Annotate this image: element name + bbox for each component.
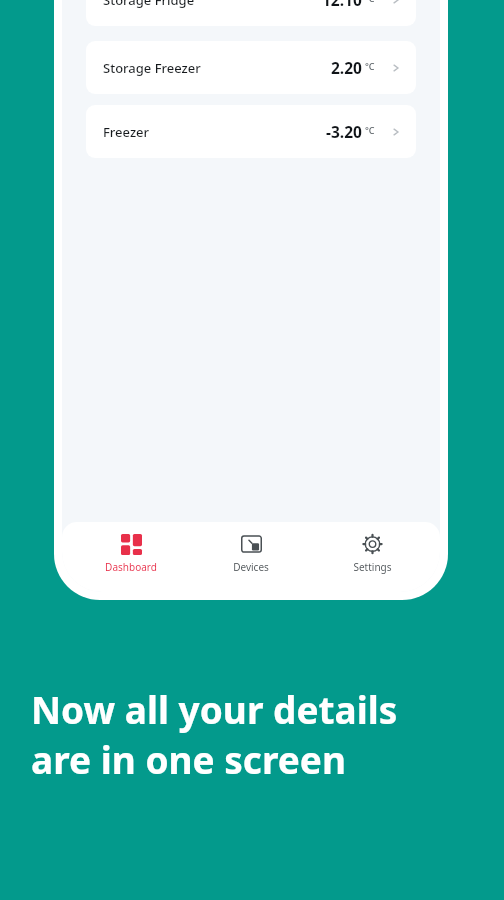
staticText: 2.20 (331, 57, 362, 78)
other: Devices (241, 534, 262, 555)
button[interactable]: Storage Fridge (86, 0, 416, 26)
other: Settings (362, 534, 383, 555)
staticText: Storage Freezer (103, 59, 201, 77)
other: Dashboard (121, 534, 142, 555)
button[interactable]: Devices (199, 530, 303, 578)
staticText: -3.20 (326, 121, 362, 142)
staticText: Devices (233, 560, 269, 574)
staticText: °C (365, 124, 375, 136)
staticText: °C (365, 60, 375, 72)
staticText: Freezer (103, 123, 150, 141)
staticText: Storage Fridge (103, 0, 195, 9)
staticText: are in one screen (31, 734, 346, 784)
staticText: °C (365, 0, 375, 4)
button[interactable]: Freezer (86, 105, 416, 158)
staticText: Settings (353, 560, 392, 574)
button[interactable]: Settings (320, 530, 424, 578)
staticText: 12.10 (322, 0, 362, 10)
staticText: Now all your details (31, 684, 398, 734)
staticText: Dashboard (105, 560, 157, 574)
button[interactable]: Dashboard (79, 530, 183, 578)
button[interactable]: Storage Freezer (86, 41, 416, 94)
